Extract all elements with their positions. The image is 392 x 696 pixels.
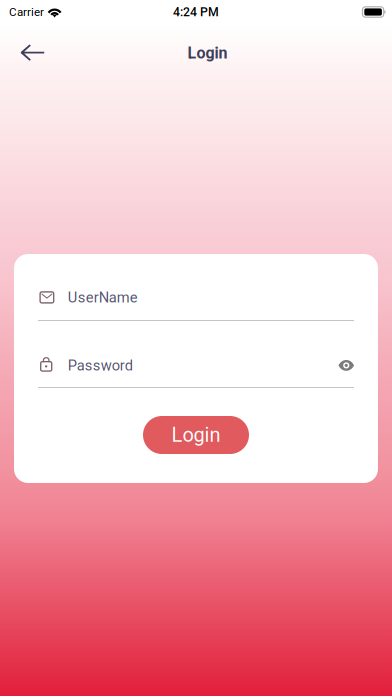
button[interactable]: Password (14, 321, 378, 388)
staticText: 4:24 PM (173, 5, 219, 19)
staticText: Login (187, 44, 227, 62)
staticText: UserName (68, 289, 138, 306)
button[interactable]: Login (143, 416, 249, 454)
staticText: Password (68, 357, 133, 374)
button[interactable]: Back (12, 36, 53, 70)
button[interactable]: UserName (14, 254, 378, 321)
button[interactable]: Show password (338, 360, 354, 371)
staticText: Carrier (9, 5, 44, 19)
staticText: Login (171, 423, 220, 447)
